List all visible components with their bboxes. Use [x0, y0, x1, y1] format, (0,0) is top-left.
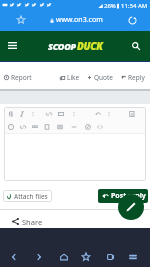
button[interactable]: Redo options [103, 107, 115, 120]
staticText: www.on3.com [56, 15, 103, 25]
button[interactable]: Search [125, 35, 146, 56]
button[interactable]: Menu [2, 35, 23, 56]
button[interactable]: Share [10, 215, 45, 228]
staticText: SCOOP [48, 40, 76, 52]
button[interactable]: Text options [27, 107, 39, 120]
button[interactable]: Like [59, 73, 81, 82]
button[interactable]: Home [53, 246, 75, 267]
staticText: Like [67, 73, 80, 82]
button[interactable]: Undo [92, 107, 104, 120]
button[interactable]: Emoji [5, 120, 17, 133]
button[interactable]: Bookmarks [75, 246, 97, 267]
button[interactable]: Menu [122, 246, 144, 267]
button[interactable]: Quote [29, 120, 41, 133]
button[interactable]: Back [3, 246, 25, 267]
staticText: Post reply [111, 191, 146, 201]
button[interactable]: Horizontal rule [68, 120, 80, 133]
button[interactable]: More [68, 107, 80, 120]
button[interactable]: Compose post [118, 194, 144, 220]
button[interactable]: Link [43, 107, 55, 120]
button[interactable]: Bold [5, 107, 17, 120]
button[interactable]: Spoiler [82, 120, 94, 133]
button[interactable]: Bookmark [11, 10, 31, 30]
button[interactable]: Attach files [3, 190, 52, 202]
staticText: Share [22, 217, 43, 227]
button[interactable]: Code [94, 120, 106, 133]
staticText: Reply [128, 73, 145, 82]
button[interactable]: Insert link [17, 120, 29, 133]
button[interactable]: Report [3, 73, 33, 82]
staticText: Report [11, 73, 32, 82]
button[interactable]: Attach file [41, 120, 53, 133]
staticText: 11:54 AM [121, 2, 148, 10]
button[interactable]: Reply [120, 73, 146, 82]
staticText: DUCK [77, 39, 103, 53]
button[interactable]: Reload [122, 10, 142, 30]
button[interactable]: Preview [126, 107, 138, 120]
staticText: Quote [94, 73, 114, 82]
button[interactable]: Tabs [100, 246, 122, 267]
button[interactable]: Image [55, 107, 67, 120]
button[interactable]: Forward [28, 246, 50, 267]
staticText: Attach files [14, 192, 48, 201]
staticText: 26% [104, 2, 116, 10]
button[interactable]: Table [54, 120, 66, 133]
button[interactable]: Italic [16, 107, 28, 120]
button[interactable]: Post reply [98, 189, 148, 203]
button[interactable]: Quote [86, 73, 115, 82]
